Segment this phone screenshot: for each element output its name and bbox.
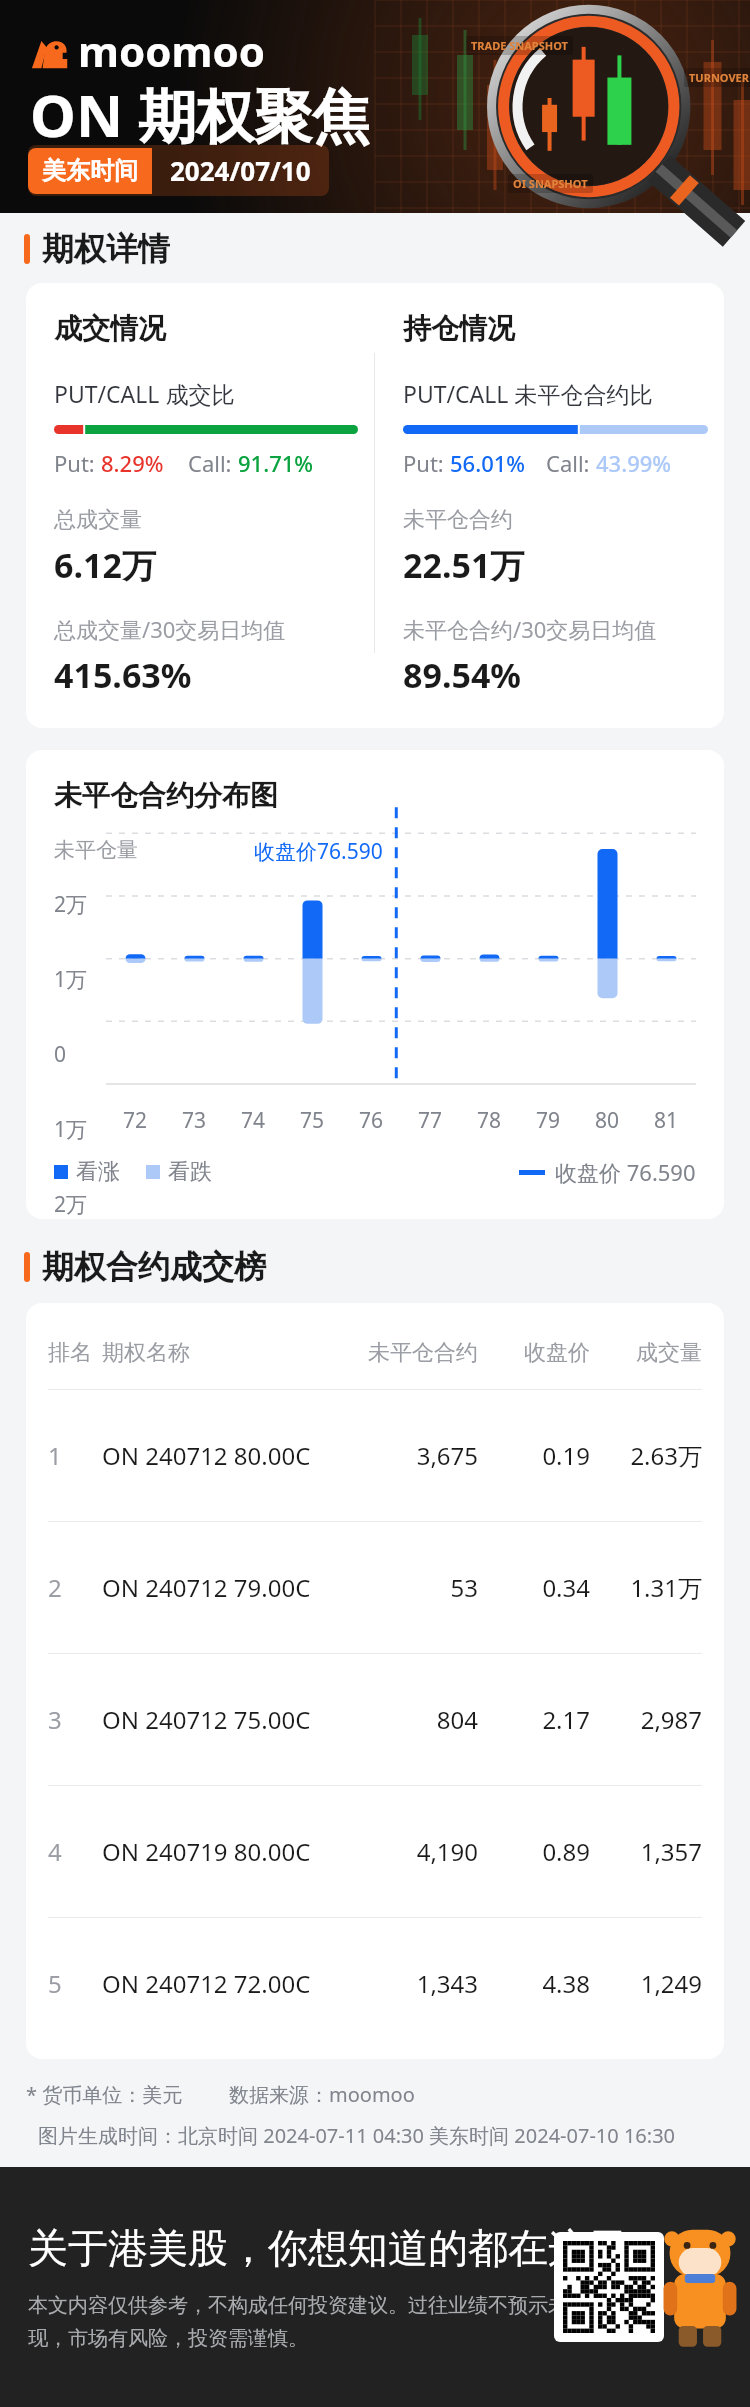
staticText: TRADE SNAPSHOT (471, 38, 568, 53)
staticText: PUT/CALL 未平仓合约比 (403, 378, 653, 409)
staticText: moomoo (78, 22, 265, 79)
staticText: 1万 (54, 1115, 88, 1144)
staticText: 0 (54, 1040, 67, 1069)
staticText: 804 (350, 1703, 478, 1736)
staticText: 4 (48, 1835, 102, 1868)
staticText: 1,343 (350, 1967, 478, 2000)
staticText: 未平仓合约分布图 (54, 778, 278, 813)
staticText: 1,249 (590, 1967, 702, 2000)
button[interactable]: 4 (48, 1786, 702, 1917)
staticText: 总成交量/30交易日均值 (54, 614, 286, 644)
staticText: ON 240712 75.00C (102, 1703, 350, 1736)
staticText: 2.63万 (590, 1439, 702, 1472)
staticText: 22.51万 (403, 542, 525, 588)
staticText: ON 240712 79.00C (102, 1571, 350, 1604)
staticText: 成交量 (590, 1339, 702, 1367)
staticText: 成交情况 (54, 311, 166, 346)
button[interactable]: 3 (48, 1654, 702, 1785)
staticText: 0.19 (478, 1439, 590, 1472)
staticText: 2万 (54, 890, 88, 919)
button[interactable]: 美东时间 (28, 145, 329, 196)
staticText: 美东时间 (42, 156, 138, 186)
button[interactable]: QR code (554, 2232, 664, 2342)
staticText: 8.29% (101, 448, 164, 478)
staticText: 看跌 (168, 1158, 212, 1186)
staticText: 89.54% (403, 652, 522, 698)
staticText: 43.99% (596, 448, 672, 478)
staticText: ON 240719 80.00C (102, 1835, 350, 1868)
staticText: 1 (48, 1439, 102, 1472)
staticText: 0.89 (478, 1835, 590, 1868)
staticText: 78 (477, 1106, 502, 1135)
staticText: 80 (595, 1106, 620, 1135)
staticText: Call: (188, 448, 238, 478)
staticText: 0.34 (478, 1571, 590, 1604)
staticText: 期权名称 (102, 1339, 350, 1367)
staticText: 关于港美股，你想知道的都在这里 (28, 2223, 628, 2273)
button[interactable]: 5 (48, 1918, 702, 2049)
staticText: 2,987 (590, 1703, 702, 1736)
staticText: OI SNAPSHOT (513, 176, 588, 191)
staticText: ON 240712 72.00C (102, 1967, 350, 2000)
button[interactable]: 2 (48, 1522, 702, 1653)
staticText: 总成交量 (54, 506, 142, 534)
staticText: 未平仓合约 (403, 506, 513, 534)
staticText: 2万 (54, 1190, 88, 1219)
staticText: 排名 (48, 1339, 102, 1367)
staticText: 72 (123, 1106, 148, 1135)
staticText: 未平仓合约/30交易日均值 (403, 614, 657, 644)
staticText: 415.63% (54, 652, 192, 698)
button[interactable]: 1 (48, 1390, 702, 1521)
staticText: 73 (182, 1106, 207, 1135)
staticText: 2024/07/10 (170, 153, 311, 188)
staticText: 期权详情 (42, 229, 170, 269)
staticText: 79 (536, 1106, 561, 1135)
staticText: 74 (241, 1106, 266, 1135)
staticText: 期权合约成交榜 (42, 1247, 266, 1287)
staticText: TURNOVER (689, 70, 749, 85)
staticText: 4.38 (478, 1967, 590, 2000)
staticText: 76 (359, 1106, 384, 1135)
staticText: 持仓情况 (403, 311, 515, 346)
staticText: Put: (54, 448, 101, 478)
staticText: 1,357 (590, 1835, 702, 1868)
staticText: 看涨 (76, 1158, 120, 1186)
staticText: 4,190 (350, 1835, 478, 1868)
staticText: 53 (350, 1571, 478, 1604)
staticText: * 货币单位：美元 (26, 2081, 183, 2108)
staticText: Call: (546, 448, 596, 478)
staticText: 1万 (54, 965, 88, 994)
staticText: 未平仓量 (54, 837, 138, 863)
staticText: ON 期权聚焦 (30, 75, 371, 154)
staticText: ON 240712 80.00C (102, 1439, 350, 1472)
staticText: 6.12万 (54, 542, 156, 588)
staticText: 图片生成时间：北京时间 2024-07-11 04:30 美东时间 2024-0… (38, 2122, 676, 2149)
staticText: 91.71% (238, 448, 314, 478)
staticText: 81 (654, 1106, 679, 1135)
staticText: 1.31万 (590, 1571, 702, 1604)
staticText: 5 (48, 1967, 102, 2000)
staticText: 收盘价 76.590 (555, 1157, 696, 1187)
staticText: 数据来源：moomoo (229, 2081, 415, 2108)
staticText: PUT/CALL 成交比 (54, 378, 235, 409)
staticText: 3 (48, 1703, 102, 1736)
staticText: 收盘价 (478, 1339, 590, 1367)
staticText: 2.17 (478, 1703, 590, 1736)
staticText: 收盘价76.590 (254, 837, 383, 866)
staticText: 77 (418, 1106, 443, 1135)
staticText: 未平仓合约 (350, 1339, 478, 1367)
staticText: 现，市场有风险，投资需谨慎。 (28, 2326, 308, 2351)
staticText: Put: (403, 448, 450, 478)
staticText: 2 (48, 1571, 102, 1604)
staticText: 56.01% (450, 448, 526, 478)
staticText: 3,675 (350, 1439, 478, 1472)
staticText: 75 (300, 1106, 325, 1135)
staticText: 本文内容仅供参考，不构成任何投资建议。过往业绩不预示未来表 (28, 2293, 608, 2318)
